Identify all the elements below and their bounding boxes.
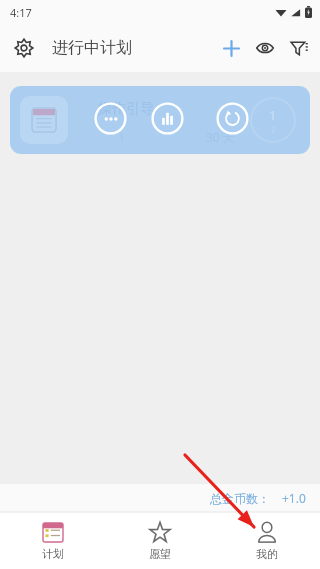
staticText: 我的 bbox=[256, 547, 278, 561]
button[interactable]: Action bbox=[151, 102, 184, 135]
button[interactable]: Filter bbox=[282, 31, 316, 65]
button[interactable]: Action bbox=[94, 102, 127, 135]
staticText: 总金币数： bbox=[210, 491, 270, 506]
button[interactable]: 愿望 bbox=[106, 512, 213, 569]
staticText: 进行中计划 bbox=[52, 38, 132, 58]
button[interactable]: Action bbox=[216, 102, 249, 135]
button[interactable]: 我的 bbox=[213, 512, 320, 569]
button[interactable]: Visibility bbox=[248, 31, 282, 65]
staticText: 1 bbox=[269, 106, 277, 124]
button[interactable]: 计划 bbox=[0, 512, 106, 569]
button[interactable]: Add bbox=[214, 31, 248, 65]
staticText: 4:17 bbox=[10, 5, 32, 20]
staticText: 操作引导 bbox=[98, 100, 154, 118]
button[interactable]: 操作引导 bbox=[10, 86, 310, 154]
staticText: 愿望 bbox=[149, 547, 171, 561]
staticText: +1.0 bbox=[282, 490, 306, 506]
staticText: 计划 bbox=[42, 547, 64, 561]
staticText: 30 天 bbox=[206, 129, 235, 145]
staticText: 1 bbox=[118, 129, 125, 145]
button[interactable]: Settings bbox=[6, 30, 42, 66]
staticText: 2 bbox=[271, 124, 276, 135]
